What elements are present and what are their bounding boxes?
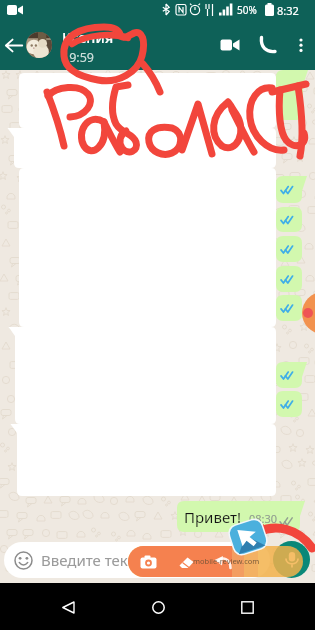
button[interactable]: Camera <box>135 549 161 575</box>
button[interactable]: More options <box>287 20 315 70</box>
button[interactable]: Back <box>0 20 26 70</box>
button[interactable]: Back <box>46 585 90 629</box>
button[interactable]: Введите текст <box>4 542 270 578</box>
button[interactable]: Привет! <box>177 501 300 532</box>
button[interactable]: Home <box>136 585 180 629</box>
staticText: 08:30 <box>249 511 278 526</box>
staticText: mobile-review.com <box>193 556 260 566</box>
button[interactable]: Recent apps <box>225 585 269 629</box>
button[interactable]: Undo <box>210 549 236 575</box>
staticText: 50% <box>237 3 257 17</box>
staticText: Привет! <box>184 507 242 527</box>
button[interactable]: Ксения <box>26 20 211 70</box>
button[interactable]: Call <box>249 20 287 70</box>
staticText: Ксения <box>62 27 114 47</box>
staticText: 8:32 <box>277 3 299 18</box>
button[interactable]: Eraser <box>173 549 199 575</box>
staticText: Введите текст <box>41 550 142 570</box>
button[interactable]: Video call <box>211 20 249 70</box>
staticText: 19:59 <box>62 49 94 66</box>
button[interactable]: Voice message <box>273 541 310 578</box>
